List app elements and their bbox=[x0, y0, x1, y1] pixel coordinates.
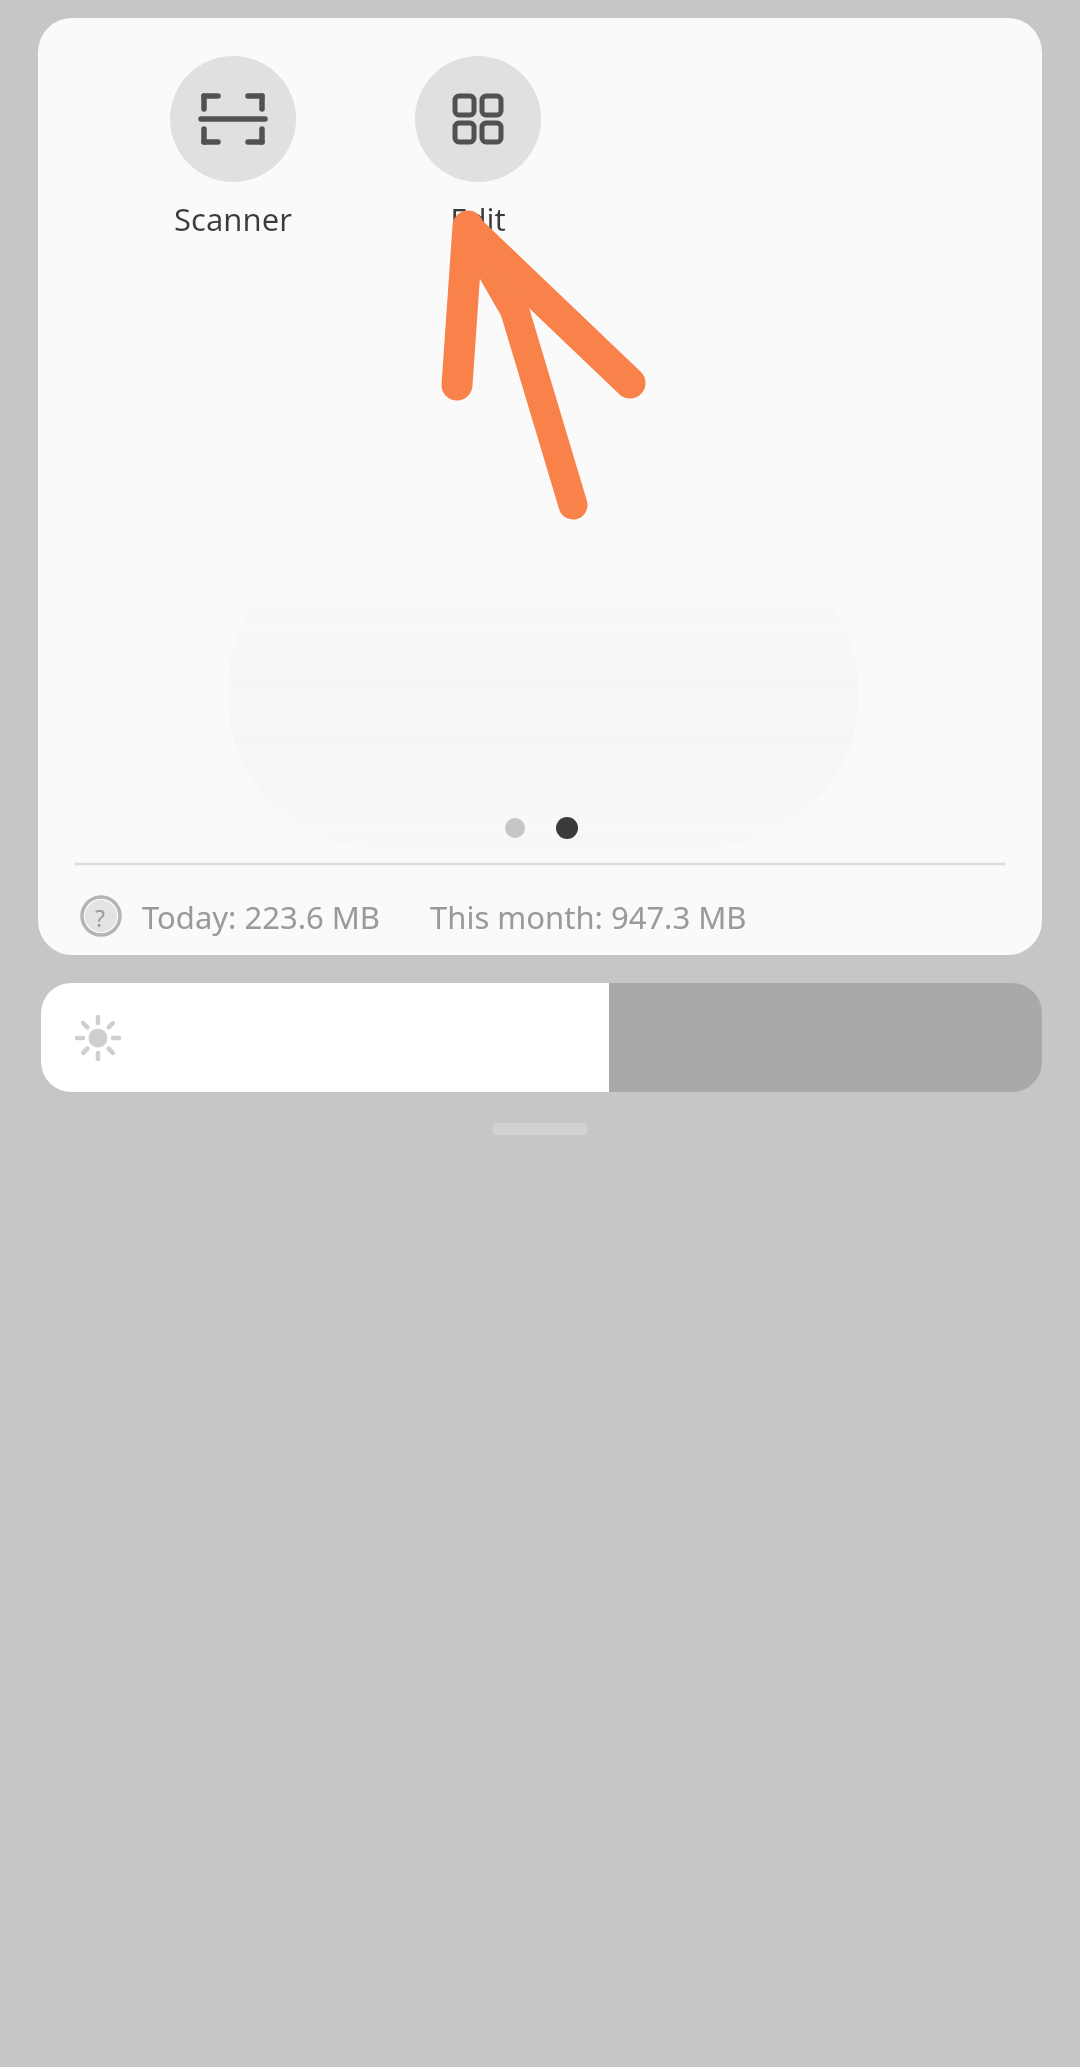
staticText: ? bbox=[95, 902, 105, 933]
button[interactable]: Scanner bbox=[148, 56, 318, 241]
button[interactable]: Edit bbox=[393, 56, 563, 241]
button[interactable]: Data usage info bbox=[60, 880, 760, 948]
staticText: Scanner bbox=[148, 198, 318, 240]
staticText: This month: 947.3 MB bbox=[430, 896, 747, 938]
staticText: Edit bbox=[393, 198, 563, 240]
button[interactable]: Brightness bbox=[41, 983, 1042, 1092]
staticText: Today: 223.6 MB bbox=[142, 896, 381, 938]
other: Data usage info bbox=[80, 895, 122, 937]
